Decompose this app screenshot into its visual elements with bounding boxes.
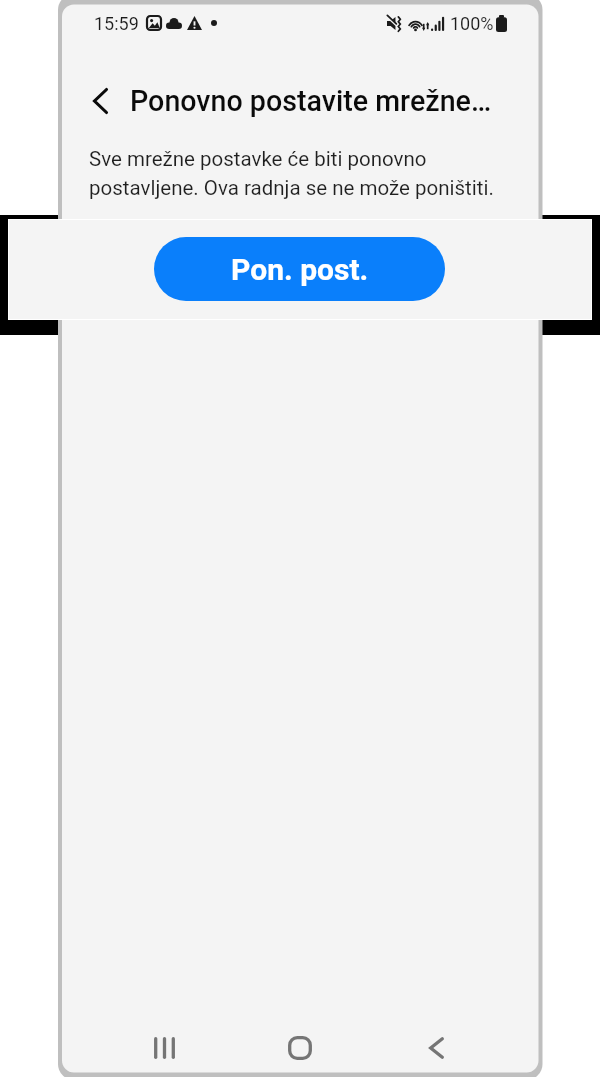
staticText: 100% [450, 13, 494, 34]
staticText: 15:59 [94, 13, 139, 34]
staticText: Ponovno postavite mrežne… [130, 84, 492, 118]
button[interactable]: Back [412, 1024, 460, 1072]
button[interactable]: Home [276, 1024, 324, 1072]
button[interactable]: Pon. post. [154, 237, 445, 301]
button[interactable]: Recent apps [140, 1024, 188, 1072]
staticText: Pon. post. [231, 252, 369, 287]
staticText: Sve mrežne postavke će biti ponovno post… [89, 147, 494, 200]
button[interactable]: Back [80, 81, 120, 121]
